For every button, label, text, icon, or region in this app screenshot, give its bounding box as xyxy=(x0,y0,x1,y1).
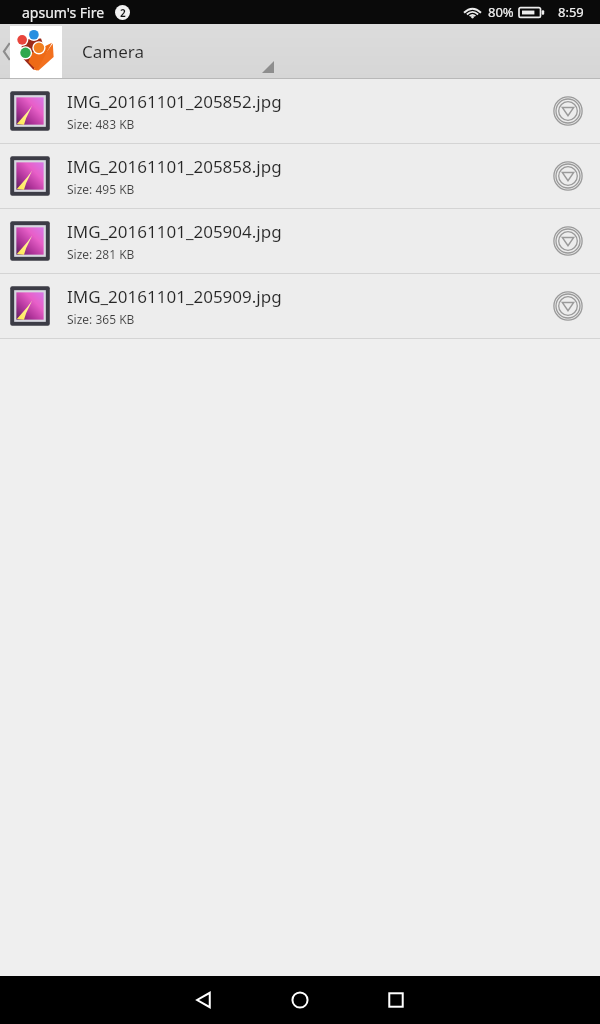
staticText: apsum's Fire xyxy=(22,3,105,22)
button[interactable]: Recent apps xyxy=(348,976,444,1024)
staticText: IMG_20161101_205858.jpg xyxy=(67,155,282,178)
staticText: Size: 365 KB xyxy=(67,311,135,327)
button[interactable]: IMG_20161101_205852.jpg xyxy=(0,79,600,143)
button[interactable]: IMG_20161101_205858.jpg xyxy=(0,144,600,208)
staticText: 8:59 xyxy=(558,3,584,21)
staticText: Size: 483 KB xyxy=(67,116,135,132)
button[interactable]: Back xyxy=(156,976,252,1024)
button[interactable]: Back xyxy=(0,24,14,79)
button[interactable]: More options xyxy=(544,282,592,330)
staticText: Size: 281 KB xyxy=(67,246,135,262)
button[interactable]: IMG_20161101_205909.jpg xyxy=(0,274,600,338)
button[interactable]: App icon xyxy=(10,26,62,78)
staticText: IMG_20161101_205909.jpg xyxy=(67,285,282,308)
staticText: IMG_20161101_205904.jpg xyxy=(67,220,282,243)
staticText: 80% xyxy=(488,3,514,21)
staticText: Size: 495 KB xyxy=(67,181,135,197)
staticText: IMG_20161101_205852.jpg xyxy=(67,90,282,113)
button[interactable]: More options xyxy=(544,152,592,200)
staticText: Camera xyxy=(82,40,144,63)
button[interactable]: IMG_20161101_205904.jpg xyxy=(0,209,600,273)
button[interactable]: More options xyxy=(544,217,592,265)
button[interactable]: Camera xyxy=(70,24,280,79)
button[interactable]: Home xyxy=(252,976,348,1024)
staticText: 2 xyxy=(120,6,126,20)
button[interactable]: More options xyxy=(544,87,592,135)
